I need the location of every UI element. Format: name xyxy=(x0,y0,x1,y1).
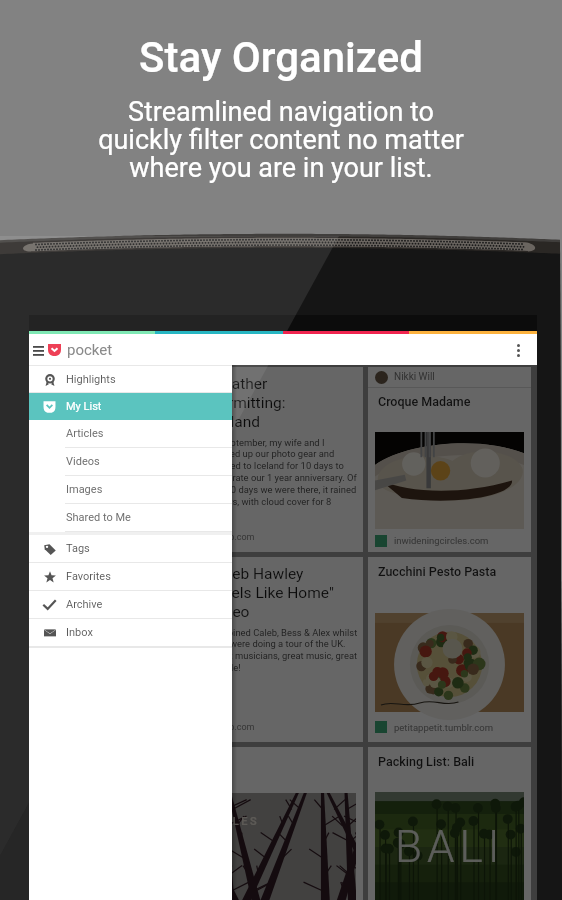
staticText: In September, my wife and I packed up ou… xyxy=(210,437,357,508)
staticText: dwell.com xyxy=(42,532,84,543)
button[interactable]: Zucchini Pesto Pasta xyxy=(368,557,531,742)
staticText: We joined Caleb, Bess & Alex whilst they… xyxy=(210,627,358,674)
staticText: Highlights xyxy=(66,373,116,386)
button[interactable]: Images xyxy=(29,476,232,503)
staticText: Favorites xyxy=(66,570,111,583)
button[interactable]: Videos xyxy=(29,448,232,475)
button[interactable]: Tiny Homes for Big Adventures xyxy=(32,367,195,552)
button[interactable]: Notes From the Road, Part Three xyxy=(32,557,195,742)
button[interactable]: Shared to Me xyxy=(29,504,232,531)
staticText: My List xyxy=(66,400,102,413)
staticText: Notes From the Road, Part Three xyxy=(42,565,123,621)
button[interactable]: More options xyxy=(507,337,529,363)
staticText: Weather Permitting: Iceland xyxy=(210,375,286,431)
button[interactable]: Articles xyxy=(29,420,232,447)
staticText: Tags xyxy=(66,542,90,555)
staticText: petitappetit.tumblr.com xyxy=(394,722,493,733)
staticText: Images xyxy=(66,483,103,496)
staticText: Tiny Homes for Big Adventures xyxy=(42,375,125,431)
staticText: Croque Madame xyxy=(378,394,471,409)
button[interactable]: Archive xyxy=(29,591,232,618)
button[interactable]: Tags xyxy=(29,535,232,562)
staticText: Packing List: Bali xyxy=(378,754,475,769)
button[interactable]: Inbox xyxy=(29,619,232,646)
staticText: vimeo.com xyxy=(210,722,255,733)
button[interactable]: Caleb Hawley "Feels Like Home" Video xyxy=(200,557,363,742)
staticText: Archive xyxy=(66,598,103,611)
staticText: Caleb Hawley "Feels Like Home" Video xyxy=(210,565,334,621)
staticText: pocket xyxy=(67,341,113,359)
button[interactable]: Weather Permitting: Iceland xyxy=(200,367,363,552)
staticText: Stay Organized xyxy=(139,33,423,82)
staticText: Videos xyxy=(66,455,100,468)
button[interactable]: Favorites xyxy=(29,563,232,590)
staticText: BALI xyxy=(395,821,505,873)
button[interactable]: Highlights xyxy=(29,366,232,392)
staticText: Articles xyxy=(66,427,104,440)
staticText: Inbox xyxy=(66,626,93,639)
staticText: Streamlined navigation to quickly filter… xyxy=(98,96,464,184)
staticText: The last leg took us through four nation… xyxy=(42,627,178,674)
staticText: Nikki Will xyxy=(394,371,435,383)
button[interactable]: My List xyxy=(29,393,232,420)
button[interactable]: Nikki Will xyxy=(368,367,531,552)
staticText: vimeo.com xyxy=(210,532,255,543)
button[interactable]: Open navigation drawer xyxy=(30,337,46,363)
staticText: Zucchini Pesto Pasta xyxy=(378,564,497,579)
staticText: MILES xyxy=(215,815,260,828)
staticText: inwideningcircles.com xyxy=(394,535,489,546)
staticText: A look at how small-space living lets yo… xyxy=(42,437,179,508)
staticText: Shared to Me xyxy=(66,511,131,524)
